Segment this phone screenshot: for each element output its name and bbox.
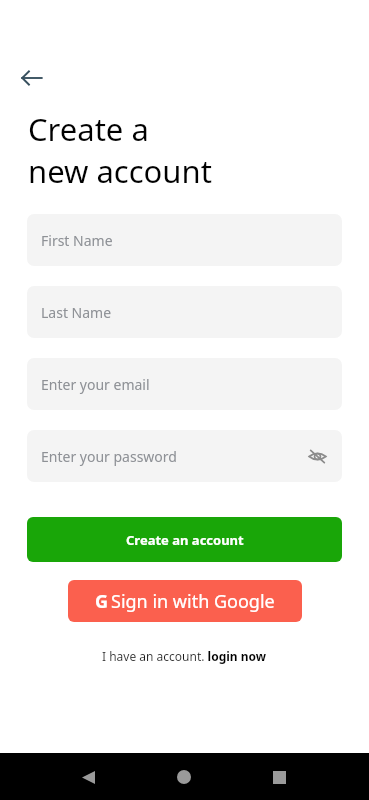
button[interactable]: Create an account: [27, 517, 342, 562]
staticText: I have an account. login now: [102, 648, 267, 664]
button[interactable]: Home: [170, 763, 198, 791]
button[interactable]: Last Name: [27, 286, 342, 338]
button[interactable]: Back: [74, 763, 102, 791]
button[interactable]: Enter your email: [27, 358, 342, 410]
staticText: Enter your password: [41, 447, 177, 466]
staticText: Create an account: [126, 531, 244, 549]
staticText: G: [95, 589, 109, 614]
staticText: Enter your email: [41, 375, 150, 394]
staticText: First Name: [41, 231, 113, 250]
staticText: new account: [28, 150, 212, 192]
button[interactable]: I have an account. login now: [98, 644, 271, 668]
button[interactable]: Toggle password visibility: [304, 443, 330, 469]
button[interactable]: Recent apps: [265, 763, 293, 791]
staticText: Last Name: [41, 303, 112, 322]
button[interactable]: Enter your password: [27, 430, 342, 482]
staticText: Create a: [28, 108, 149, 150]
staticText: Sign in with Google: [111, 589, 275, 614]
button[interactable]: First Name: [27, 214, 342, 266]
button[interactable]: Back: [12, 58, 52, 98]
button[interactable]: G: [68, 580, 302, 622]
